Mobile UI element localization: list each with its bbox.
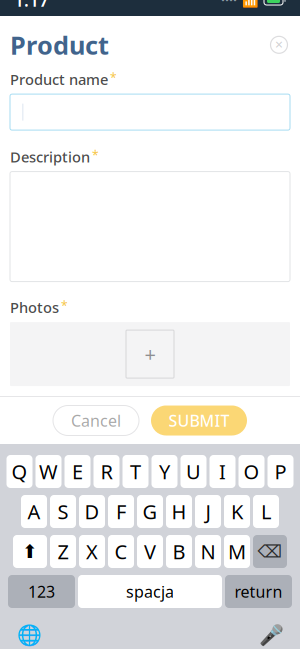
button[interactable]: H [166,495,192,528]
staticText: 🎤 [258,624,283,646]
staticText: 123 [28,581,55,602]
staticText: A [27,498,40,525]
button[interactable]: Change keyboard [12,618,46,649]
button[interactable]: return [225,575,292,608]
staticText: Product name [10,70,108,89]
staticText: P [274,458,286,485]
button[interactable]: spacja [78,575,222,608]
button[interactable]: A [21,495,47,528]
staticText: spacja [126,581,174,602]
button[interactable]: M [224,535,250,568]
button[interactable]: SUBMIT [151,405,247,435]
staticText: T [130,458,141,485]
staticText: J [205,498,210,525]
staticText: S [57,498,68,525]
button[interactable]: D [79,495,105,528]
staticText: Description [10,147,90,167]
staticText: W [39,458,58,485]
staticText: Y [159,458,170,485]
button[interactable]: K [224,495,250,528]
staticText: C [114,538,127,565]
staticText: M [228,538,246,565]
button[interactable]: I [209,455,235,488]
staticText: E [72,458,83,485]
staticText: SUBMIT [168,410,229,431]
button[interactable]: X [79,535,105,568]
staticText: * [61,298,68,313]
button[interactable]: Z [50,535,76,568]
button[interactable]: T [122,455,148,488]
staticText: Q [11,458,27,485]
button[interactable]: Dictation [254,618,288,649]
staticText: 📶 [242,0,259,8]
staticText: G [142,498,157,525]
staticText: * [110,70,117,85]
staticText: 1:17 [14,0,49,11]
button[interactable]: L [253,495,279,528]
button[interactable]: V [137,535,163,568]
staticText: O [243,458,259,485]
button[interactable]: J [195,495,221,528]
staticText: ⌫ [257,542,282,561]
staticText: R [100,458,112,485]
button[interactable]: W [35,455,61,488]
staticText: Photos [10,298,59,317]
staticText: * [92,147,99,163]
staticText: L [261,498,271,525]
staticText: 🌐 [16,624,41,646]
button[interactable]: Delete [253,535,287,568]
button[interactable]: B [166,535,192,568]
staticText: + [144,341,155,367]
button[interactable]: Cancel [53,405,139,435]
button[interactable]: C [108,535,134,568]
button[interactable]: F [108,495,134,528]
button[interactable]: G [137,495,163,528]
staticText: return [234,581,282,602]
staticText: Z [57,538,68,565]
button[interactable]: Close [264,30,294,60]
button[interactable]: P [267,455,293,488]
staticText: D [84,498,99,525]
staticText: Product [10,28,109,62]
button[interactable]: R [93,455,119,488]
staticText: B [172,538,185,565]
button[interactable]: 123 [8,575,75,608]
staticText: V [144,538,156,565]
button[interactable]: U [180,455,206,488]
staticText: X [86,538,98,565]
button[interactable]: E [64,455,90,488]
staticText: Cancel [71,410,121,431]
staticText: ⬆ [22,541,38,562]
staticText: I [219,458,226,485]
staticText: U [186,458,201,485]
staticText: K [231,498,243,525]
button[interactable]: N [195,535,221,568]
staticText: F [116,498,126,525]
staticText: ✕ [274,39,283,51]
button[interactable]: Q [6,455,32,488]
staticText: N [200,538,215,565]
staticText: H [171,498,186,525]
button[interactable]: Add photo [126,330,174,378]
button[interactable]: S [50,495,76,528]
button[interactable]: Shift [13,535,47,568]
staticText: •••• [221,0,237,7]
button[interactable]: O [238,455,264,488]
button[interactable]: Y [151,455,177,488]
